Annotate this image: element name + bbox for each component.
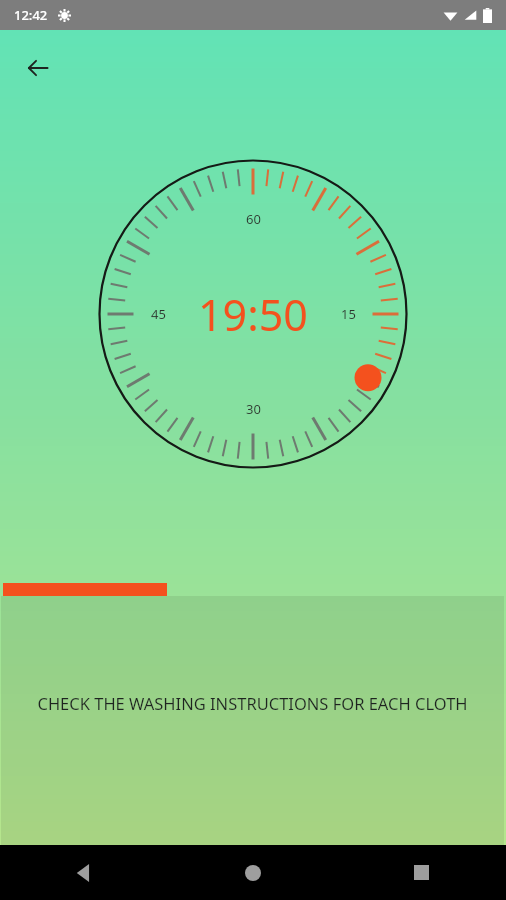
staticText: 19:50: [198, 285, 308, 344]
staticText: 12:42: [14, 6, 48, 24]
button[interactable]: Back: [14, 44, 62, 92]
button[interactable]: 60: [98, 159, 408, 469]
button[interactable]: Recent apps: [337, 845, 506, 900]
staticText: 30: [246, 400, 261, 418]
staticText: 15: [341, 305, 356, 323]
staticText: 45: [151, 305, 166, 323]
staticText: 60: [246, 210, 261, 228]
button[interactable]: Back: [0, 845, 168, 900]
button[interactable]: Home: [168, 845, 337, 900]
button[interactable]: CHECK THE WASHING INSTRUCTIONS FOR EACH …: [1, 596, 504, 845]
staticText: CHECK THE WASHING INSTRUCTIONS FOR EACH …: [37, 692, 468, 714]
